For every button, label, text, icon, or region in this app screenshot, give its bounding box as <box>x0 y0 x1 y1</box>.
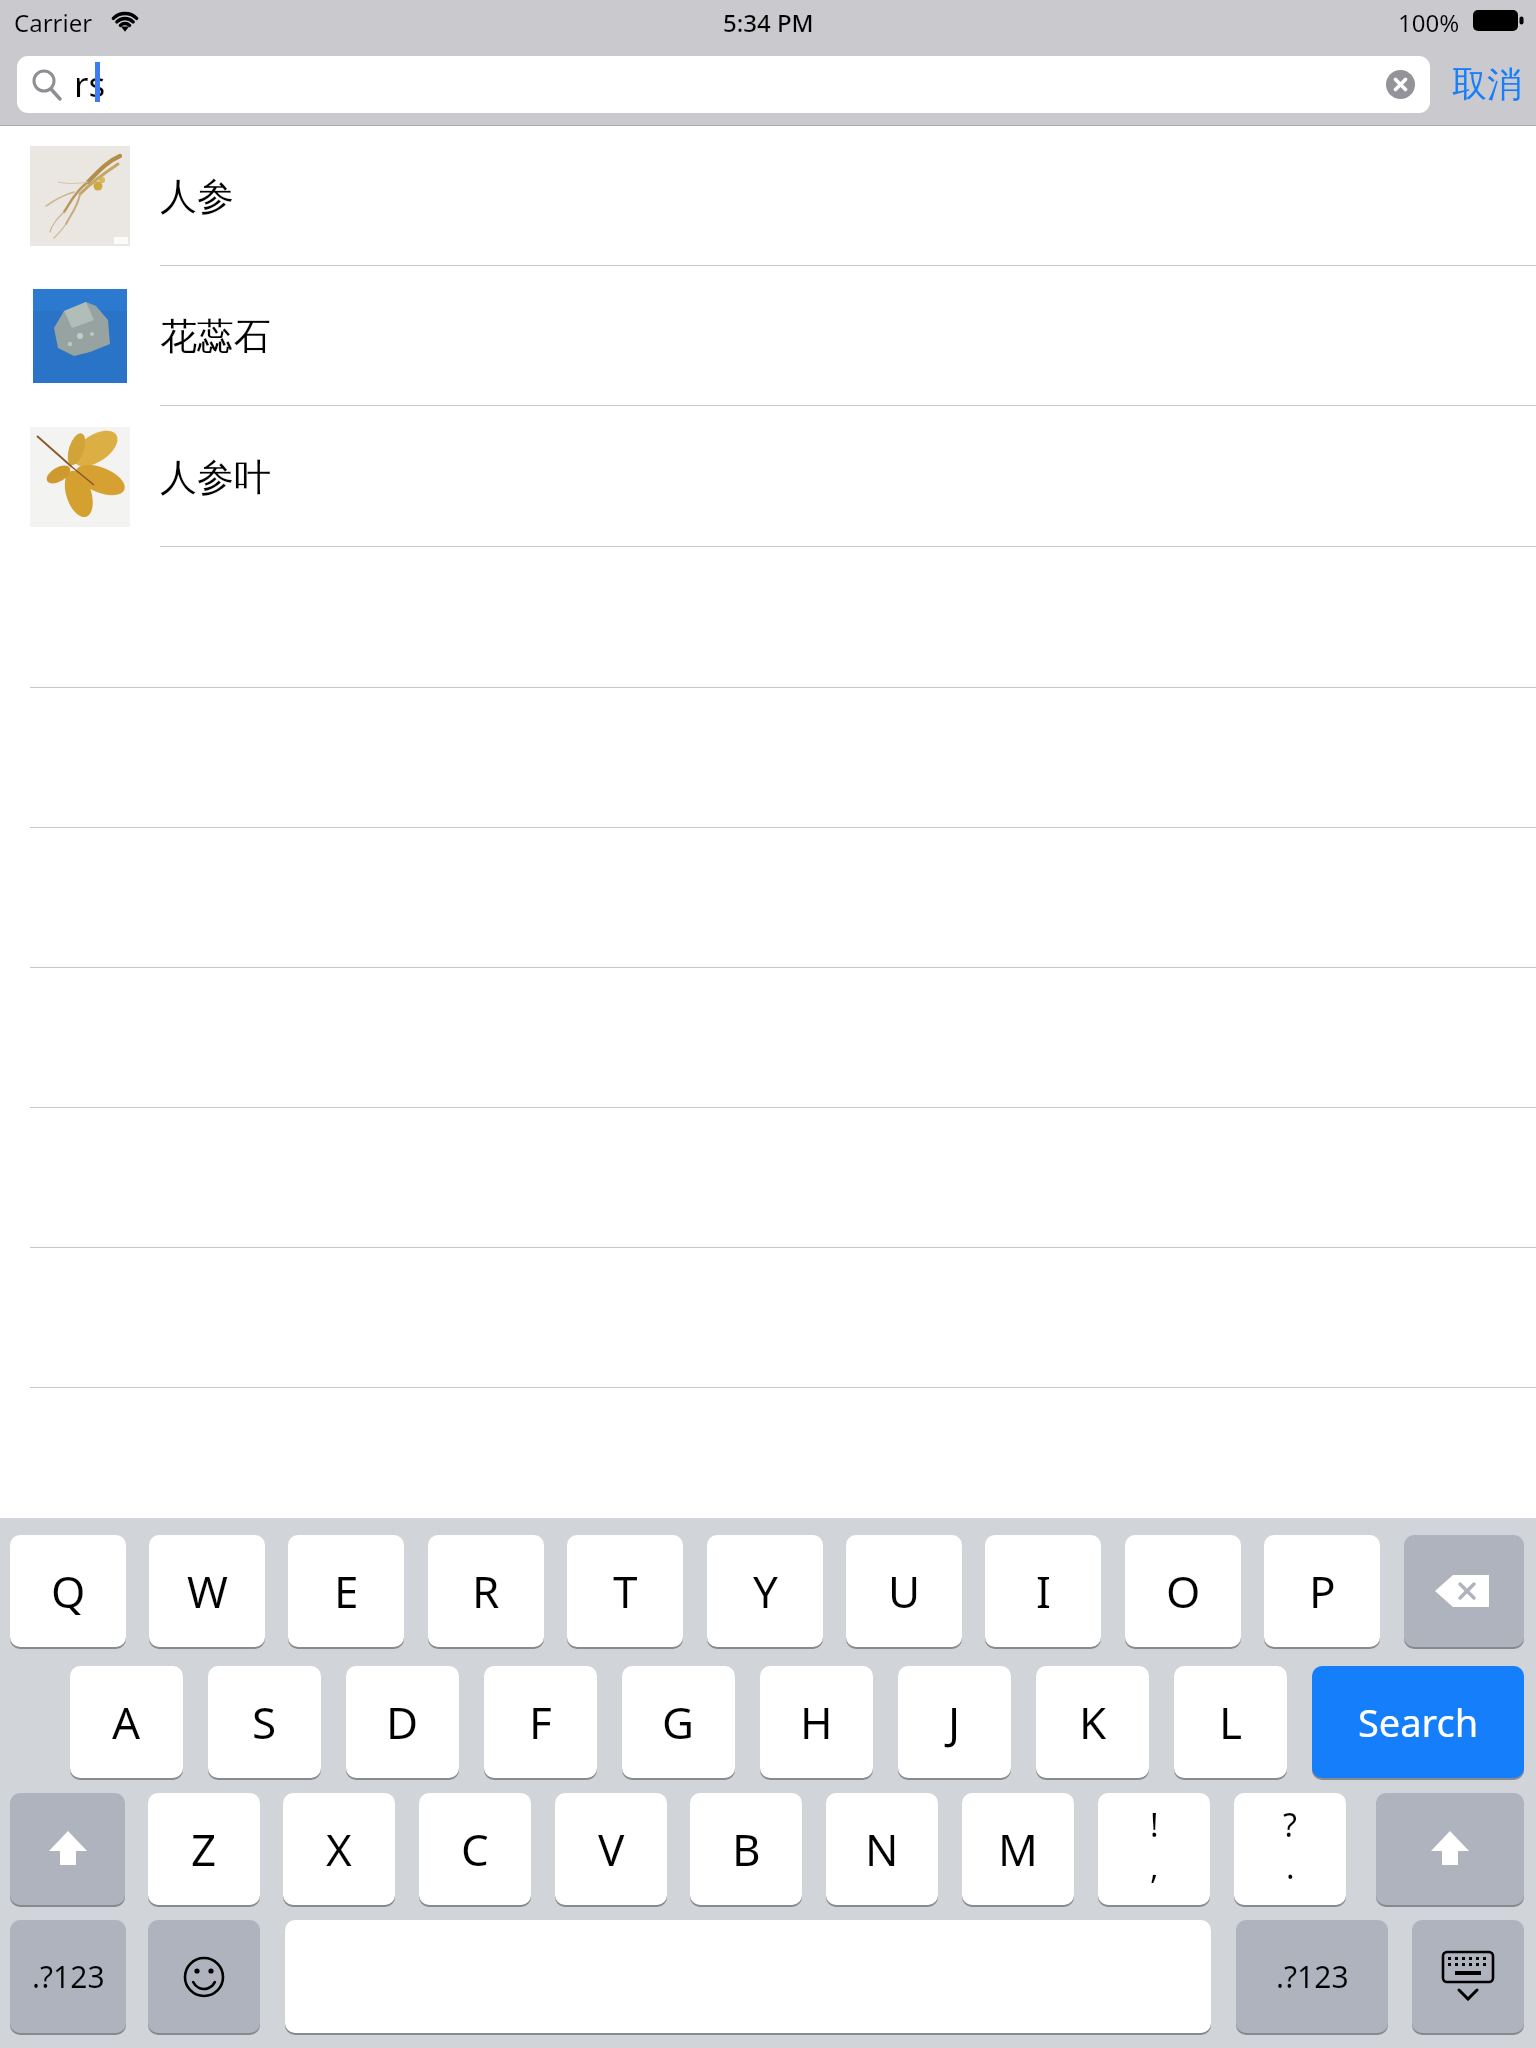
staticText: F <box>529 1692 552 1752</box>
button[interactable] <box>1376 1793 1524 1905</box>
button[interactable]: D <box>346 1666 459 1778</box>
button[interactable] <box>1404 1535 1524 1647</box>
staticText: L <box>1219 1692 1243 1752</box>
button[interactable]: L <box>1174 1666 1287 1778</box>
button[interactable]: O <box>1125 1535 1241 1647</box>
staticText: Y <box>753 1561 778 1621</box>
staticText: N <box>865 1819 899 1879</box>
staticText: ! <box>1150 1803 1159 1847</box>
staticText: ? <box>1283 1803 1297 1847</box>
button[interactable]: B <box>690 1793 802 1905</box>
button[interactable]: V <box>555 1793 667 1905</box>
staticText: W <box>187 1561 228 1621</box>
staticText: G <box>662 1692 695 1752</box>
button[interactable]: U <box>846 1535 962 1647</box>
staticText: X <box>326 1819 352 1879</box>
button[interactable]: Q <box>10 1535 126 1647</box>
staticText: .?123 <box>1276 1956 1349 1997</box>
button[interactable]: 花蕊石 <box>0 266 1536 406</box>
button[interactable] <box>1386 70 1415 99</box>
staticText: 100% <box>1398 6 1460 36</box>
staticText: rs <box>74 60 106 108</box>
button[interactable]: I <box>985 1535 1101 1647</box>
staticText: V <box>598 1819 625 1879</box>
button[interactable]: W <box>149 1535 265 1647</box>
staticText: 5:34 PM <box>723 6 814 36</box>
staticText: K <box>1079 1692 1107 1752</box>
button[interactable]: P <box>1264 1535 1380 1647</box>
button[interactable]: M <box>962 1793 1074 1905</box>
button[interactable]: 取消 <box>1442 56 1532 112</box>
staticText: Q <box>51 1561 86 1621</box>
staticText: T <box>613 1561 638 1621</box>
staticText: B <box>732 1819 761 1879</box>
staticText: . <box>1286 1845 1295 1889</box>
button[interactable]: J <box>898 1666 1011 1778</box>
button[interactable]: A <box>70 1666 183 1778</box>
button[interactable]: ? <box>1234 1793 1346 1905</box>
button[interactable] <box>1412 1920 1524 2033</box>
staticText: , <box>1150 1845 1159 1889</box>
button[interactable]: .?123 <box>10 1920 126 2033</box>
button[interactable]: N <box>826 1793 938 1905</box>
staticText: O <box>1166 1561 1201 1621</box>
button[interactable] <box>148 1920 260 2033</box>
button[interactable] <box>10 1793 125 1905</box>
button[interactable]: 人参 <box>0 126 1536 266</box>
staticText: E <box>334 1561 359 1621</box>
button[interactable]: S <box>208 1666 321 1778</box>
staticText: 人参 <box>160 173 234 220</box>
staticText: H <box>800 1692 833 1752</box>
button[interactable]: K <box>1036 1666 1149 1778</box>
staticText: U <box>888 1561 921 1621</box>
staticText: I <box>1036 1561 1051 1621</box>
button[interactable]: R <box>428 1535 544 1647</box>
staticText: Z <box>191 1819 217 1879</box>
button[interactable]: X <box>283 1793 395 1905</box>
staticText: S <box>252 1692 277 1752</box>
button[interactable]: Z <box>148 1793 260 1905</box>
button[interactable]: Search <box>1312 1666 1524 1778</box>
staticText: 人参叶 <box>160 454 271 501</box>
staticText: M <box>998 1819 1038 1879</box>
staticText: C <box>461 1819 489 1879</box>
button[interactable] <box>17 56 1430 113</box>
staticText: P <box>1309 1561 1336 1621</box>
button[interactable]: F <box>484 1666 597 1778</box>
staticText: A <box>112 1692 141 1752</box>
staticText: R <box>472 1561 500 1621</box>
staticText: .?123 <box>32 1956 105 1997</box>
staticText: Search <box>1358 1696 1479 1748</box>
button[interactable]: C <box>419 1793 531 1905</box>
button[interactable]: H <box>760 1666 873 1778</box>
button[interactable]: ! <box>1098 1793 1210 1905</box>
staticText: D <box>386 1692 419 1752</box>
staticText: 花蕊石 <box>160 313 271 360</box>
button[interactable]: Y <box>707 1535 823 1647</box>
button[interactable]: G <box>622 1666 735 1778</box>
staticText: 取消 <box>1452 62 1522 106</box>
button[interactable]: T <box>567 1535 683 1647</box>
staticText: Carrier <box>14 6 93 36</box>
staticText: J <box>948 1692 961 1752</box>
button[interactable]: 人参叶 <box>0 407 1536 547</box>
button[interactable]: .?123 <box>1236 1920 1388 2033</box>
button[interactable]: E <box>288 1535 404 1647</box>
